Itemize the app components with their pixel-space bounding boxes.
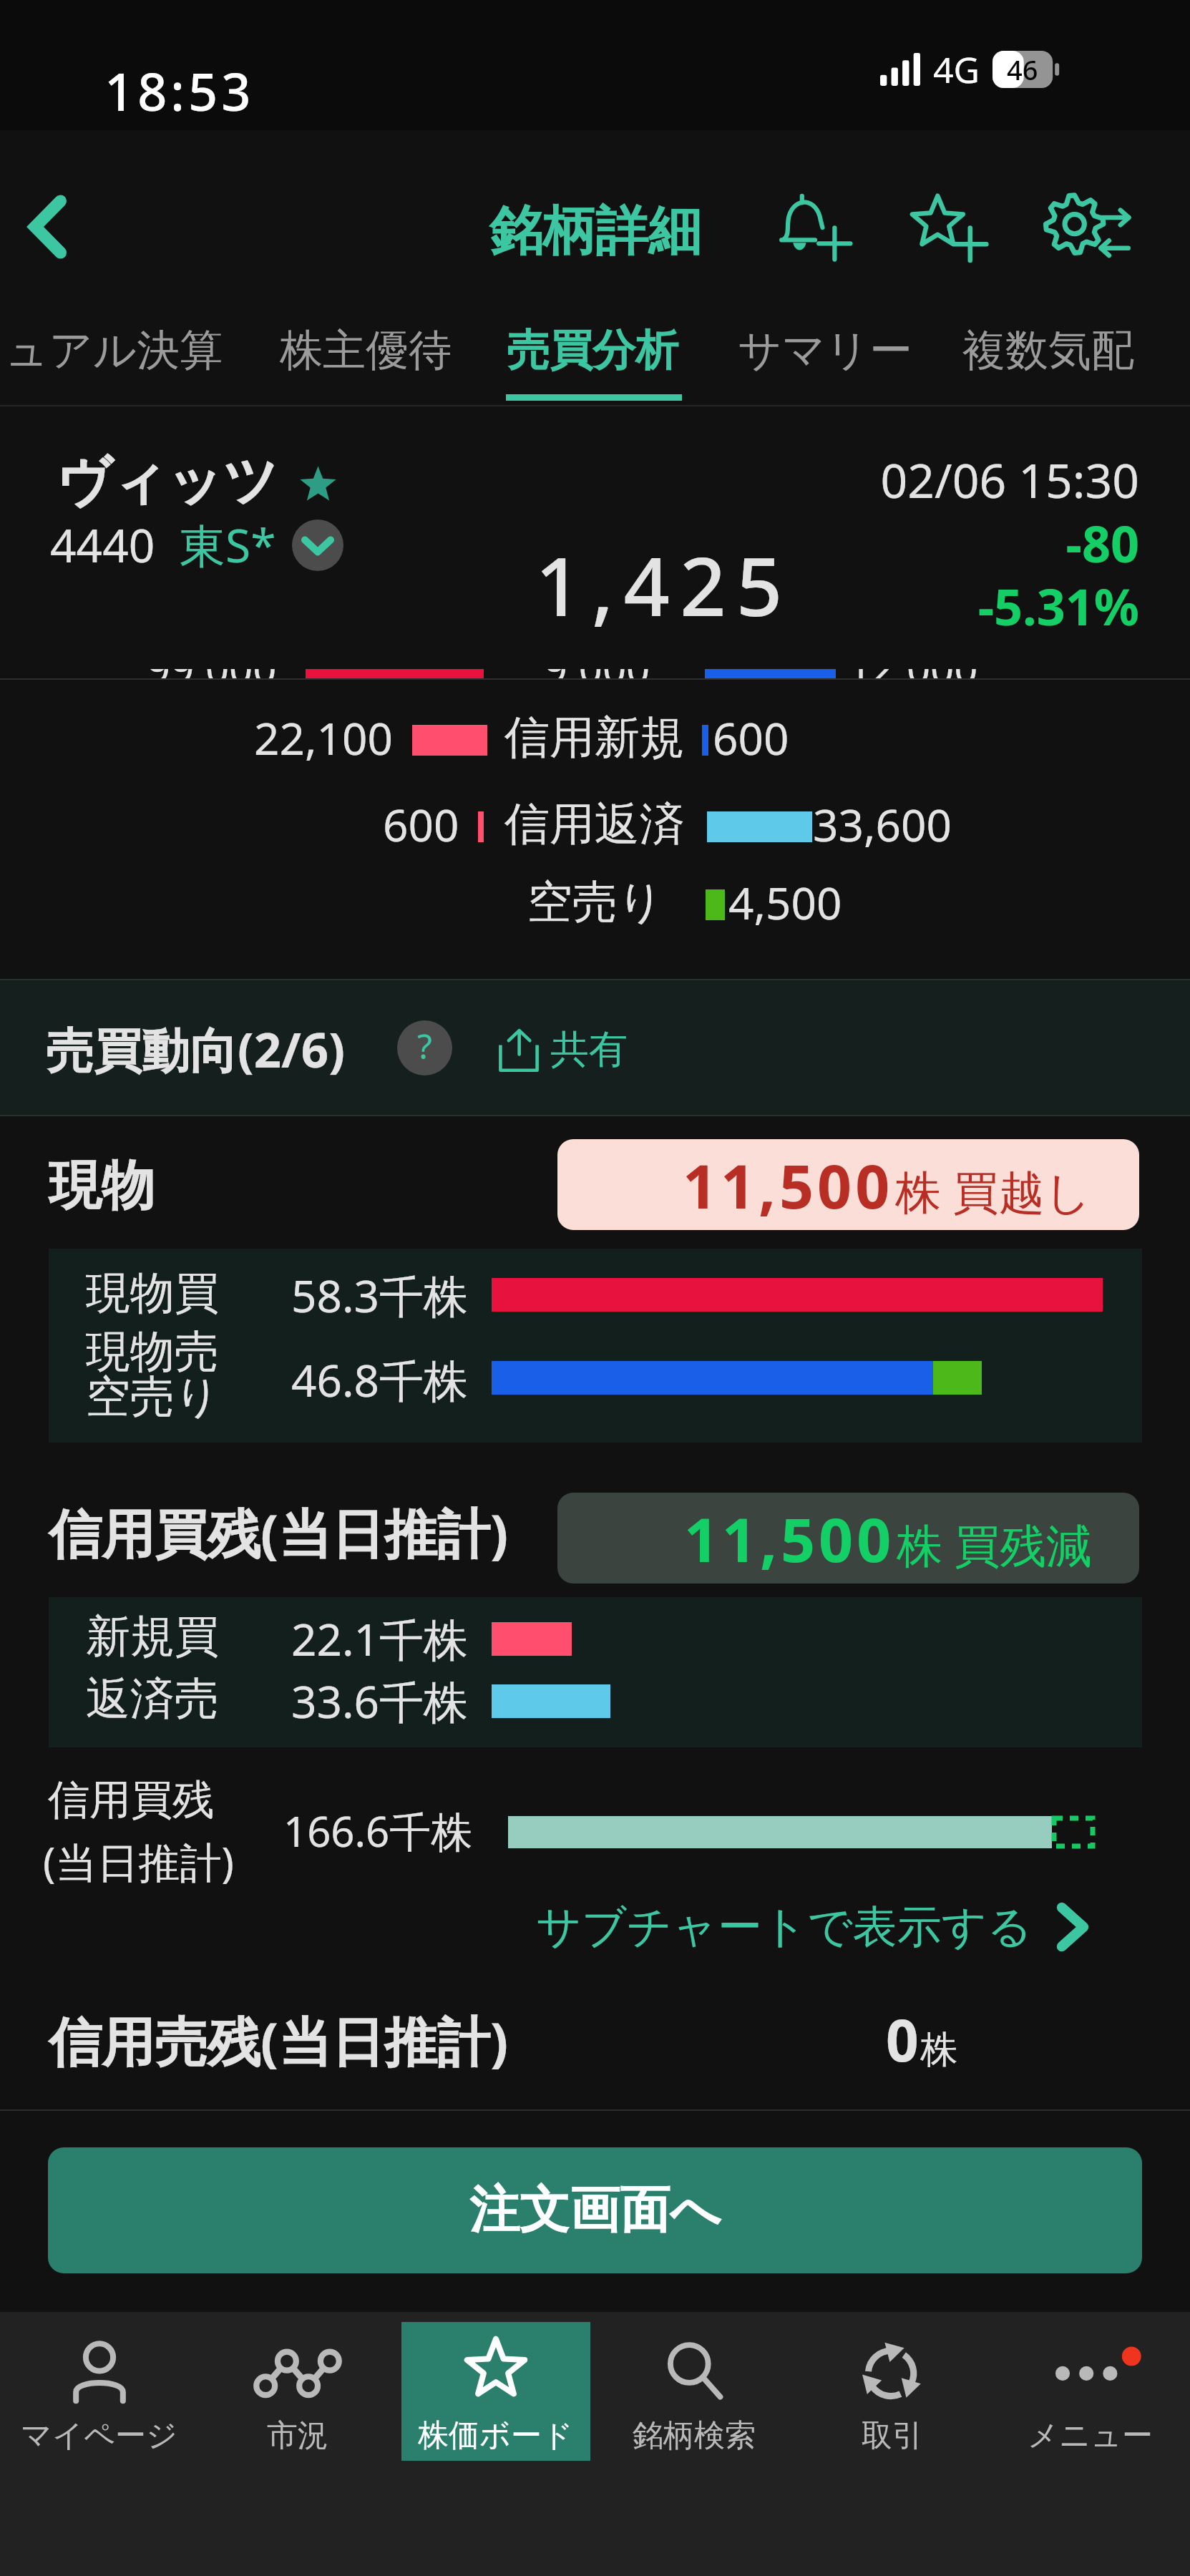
staticText: 株 (920, 2026, 957, 2074)
button[interactable]: 市況 (203, 2322, 392, 2461)
button[interactable]: ュアル決算 (0, 293, 250, 405)
staticText: 返済売 (86, 1671, 219, 1727)
button[interactable]: マイページ (5, 2322, 194, 2461)
button[interactable]: Help (397, 1020, 452, 1075)
button[interactable]: 注文画面へ (48, 2147, 1142, 2273)
button[interactable]: 11,500 (557, 1493, 1139, 1584)
staticText: 600 (713, 708, 789, 768)
button[interactable]: Settings (1020, 177, 1155, 278)
staticText: 46.8千株 (291, 1350, 469, 1410)
staticText: メニュー (1028, 2416, 1154, 2455)
staticText: 売買分析 (507, 323, 678, 378)
staticText: 取引 (862, 2416, 923, 2455)
staticText: 22.1千株 (291, 1609, 469, 1669)
button[interactable]: Add price alert (748, 177, 882, 278)
button[interactable]: 11,500 (557, 1139, 1139, 1230)
staticText: 600 (383, 794, 459, 854)
staticText: 信用買残 (48, 1774, 214, 1826)
button[interactable]: 株価ボード (401, 2322, 590, 2461)
staticText: 信用返済 (504, 796, 685, 852)
staticText: 売買動向(2/6) (46, 1016, 345, 1082)
staticText: サブチャートで表示する (536, 1899, 1033, 1955)
staticText: 株 買残減 (897, 1513, 1092, 1576)
staticText: 東S* (180, 514, 276, 576)
staticText: ュアル決算 (5, 323, 223, 378)
staticText: 12,000 (848, 639, 978, 678)
button[interactable]: 株主優待 (254, 293, 482, 405)
staticText: 4440 (50, 514, 155, 576)
staticText: 株主優待 (280, 323, 452, 378)
staticText: 4G (933, 45, 980, 94)
button[interactable]: Add to watchlist (882, 177, 1016, 278)
button[interactable]: Back (1, 180, 94, 273)
staticText: 信用新規 (504, 709, 685, 766)
staticText: マイページ (21, 2416, 178, 2455)
staticText: 9,000 (544, 639, 650, 678)
staticText: 99,000 (147, 639, 277, 678)
staticText: 市況 (267, 2416, 328, 2455)
staticText: 02/06 15:30 (644, 447, 1139, 512)
button[interactable]: サブチャートで表示する (526, 1888, 1097, 1966)
staticText: 現物 (49, 1153, 155, 1219)
staticText: 1,425 (535, 530, 793, 640)
staticText: 33.6千株 (291, 1671, 469, 1732)
button[interactable]: 共有 (484, 1014, 639, 1085)
staticText: 株 買越し (895, 1160, 1092, 1222)
button[interactable]: Market details (292, 519, 343, 571)
button[interactable]: 複数気配 (937, 293, 1164, 405)
staticText: 現物買 (86, 1265, 219, 1321)
staticText: 注文画面へ (469, 2179, 721, 2242)
staticText: 複数気配 (962, 323, 1134, 378)
staticText: 166.6千株 (283, 1802, 473, 1859)
staticText: 現物売 (86, 1324, 219, 1380)
staticText: -5.31% (644, 572, 1139, 640)
staticText: 46 (1007, 51, 1038, 88)
staticText: ? (417, 1023, 432, 1069)
staticText: ヴィッツ (56, 447, 279, 516)
staticText: 22,100 (254, 708, 393, 768)
staticText: 信用買残(当日推計) (49, 1496, 509, 1568)
staticText: 11,500 (683, 1144, 894, 1226)
staticText: 共有 (550, 1025, 628, 1074)
button[interactable]: 売買分析 (481, 293, 708, 405)
staticText: (当日推計) (43, 1833, 234, 1890)
staticText: 18:53 (104, 56, 255, 126)
staticText: 銘柄検索 (633, 2416, 756, 2455)
staticText: 空売り (86, 1369, 220, 1425)
staticText: 33,600 (813, 794, 952, 854)
staticText: 58.3千株 (291, 1265, 469, 1326)
staticText: 空売り (527, 874, 664, 930)
button[interactable]: メニュー (996, 2322, 1185, 2461)
staticText: -80 (644, 509, 1139, 577)
button[interactable]: サマリー (712, 293, 940, 405)
button[interactable]: 取引 (798, 2322, 987, 2461)
staticText: 4,500 (728, 872, 842, 932)
staticText: 銘柄詳細 (489, 198, 701, 265)
staticText: 信用売残(当日推計) (49, 2004, 509, 2077)
staticText: 0 (886, 2000, 919, 2078)
staticText: 11,500 (684, 1498, 895, 1579)
staticText: サマリー (738, 323, 913, 378)
staticText: 新規買 (86, 1609, 219, 1664)
staticText: 株価ボード (418, 2416, 574, 2455)
button[interactable]: 銘柄検索 (600, 2322, 789, 2461)
